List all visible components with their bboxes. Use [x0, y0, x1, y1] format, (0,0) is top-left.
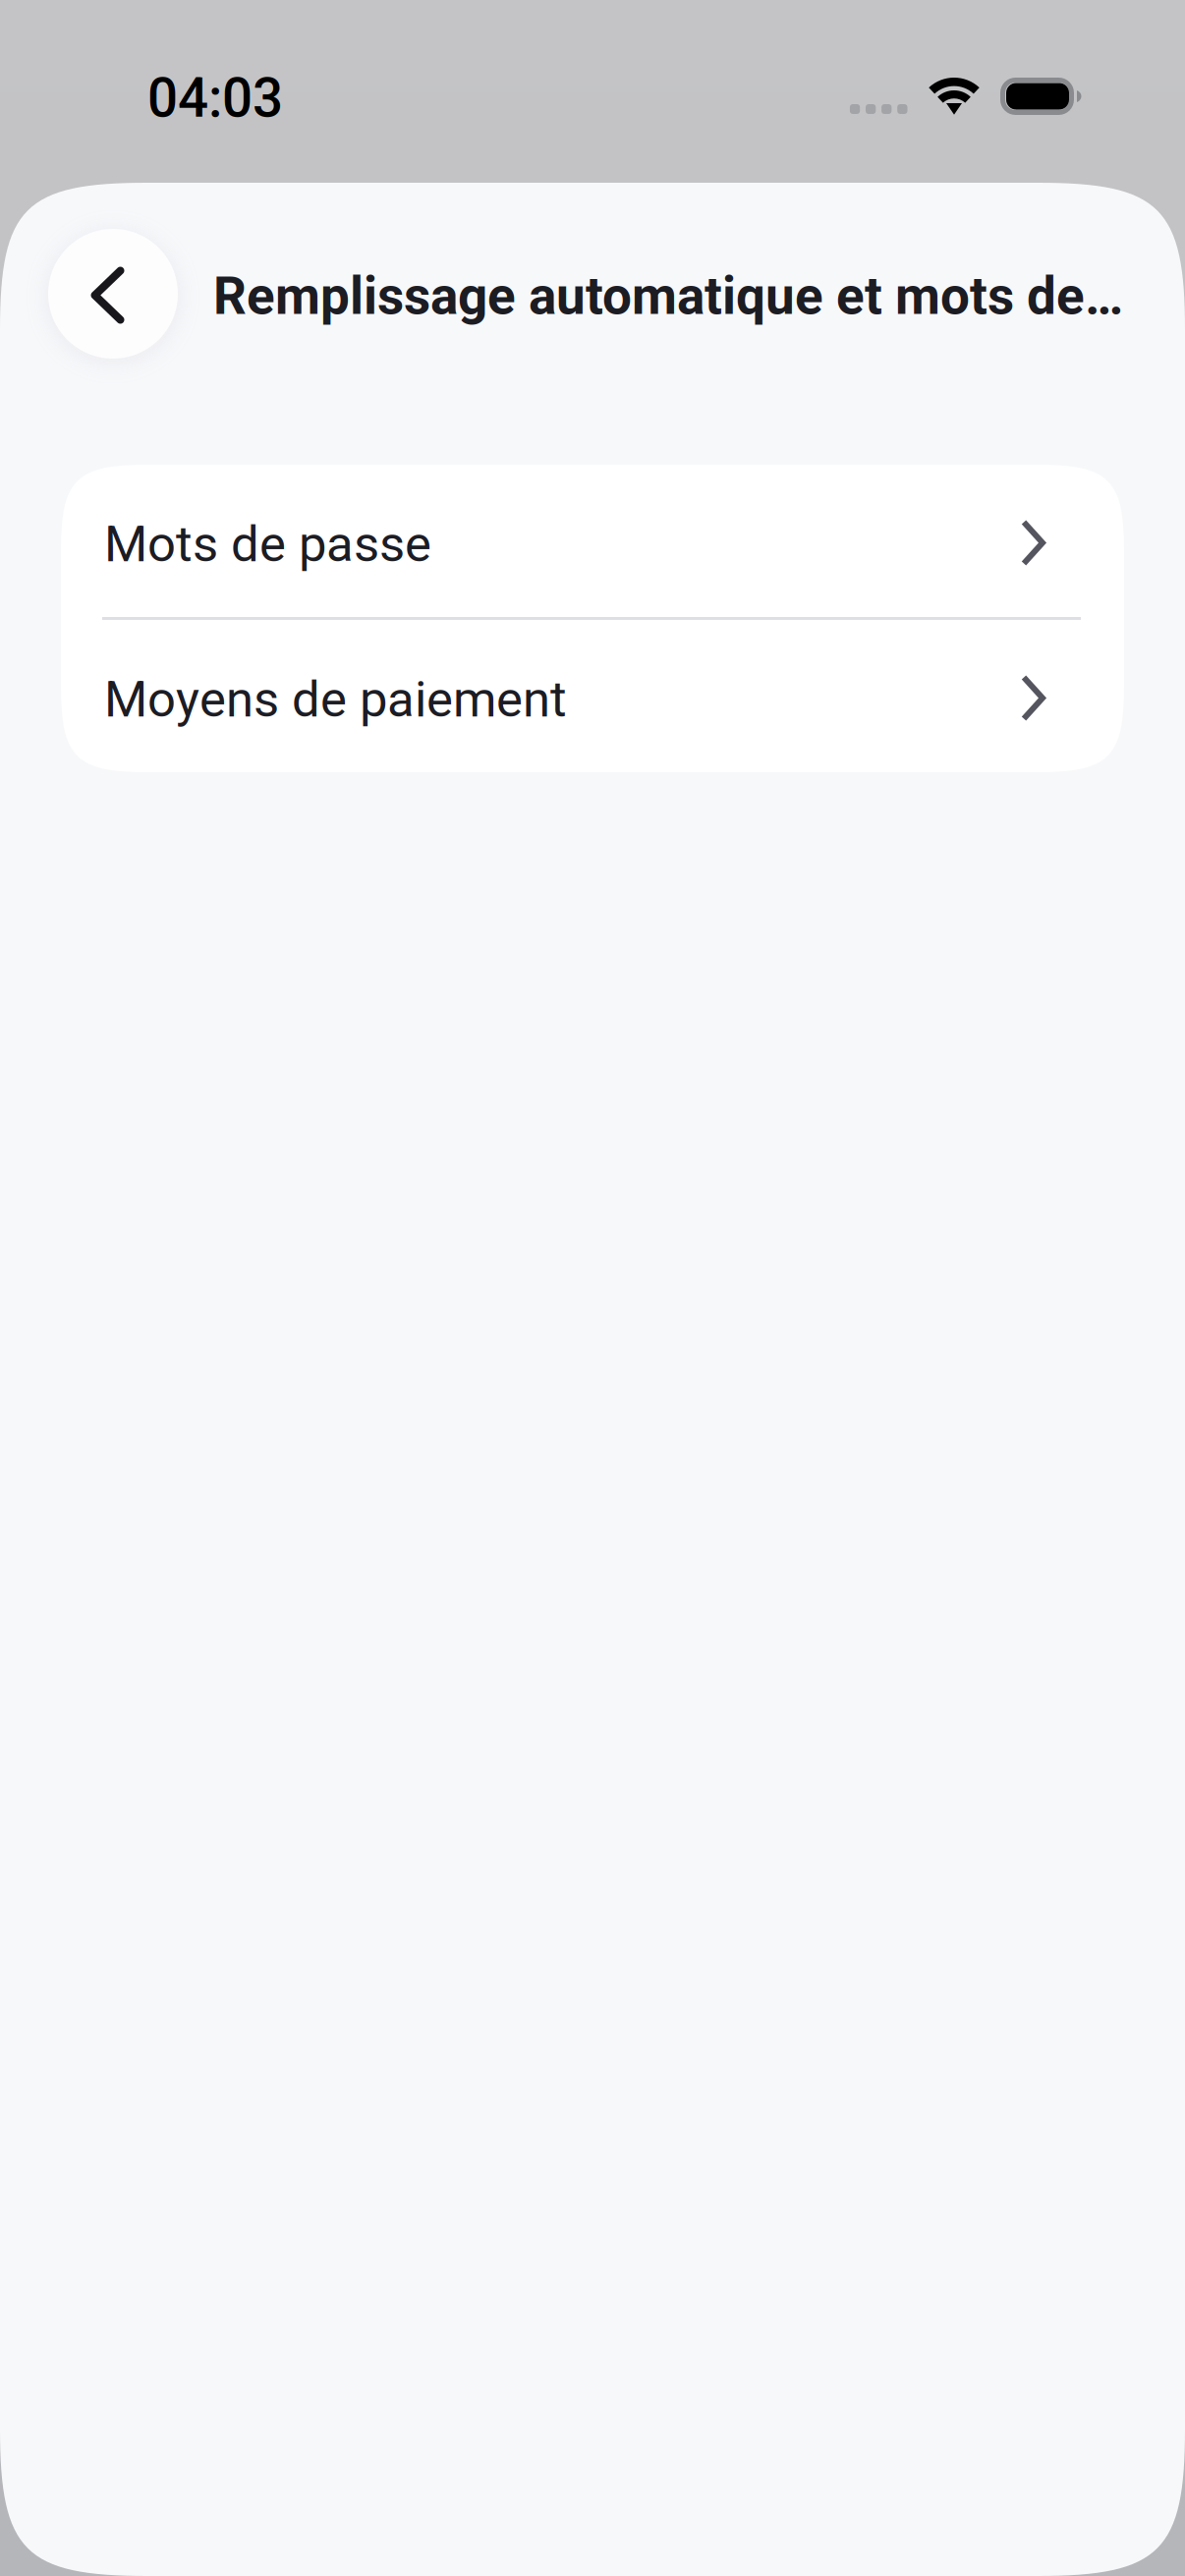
button[interactable]: Mots de passe: [61, 465, 1124, 617]
staticText: Remplissage automatique et mots de…: [213, 266, 1123, 327]
button[interactable]: Back: [48, 229, 178, 359]
staticText: Mots de passe: [104, 515, 431, 573]
button[interactable]: Moyens de paiement: [61, 620, 1124, 772]
staticText: 04:03: [147, 67, 283, 130]
staticText: Moyens de paiement: [104, 670, 567, 729]
